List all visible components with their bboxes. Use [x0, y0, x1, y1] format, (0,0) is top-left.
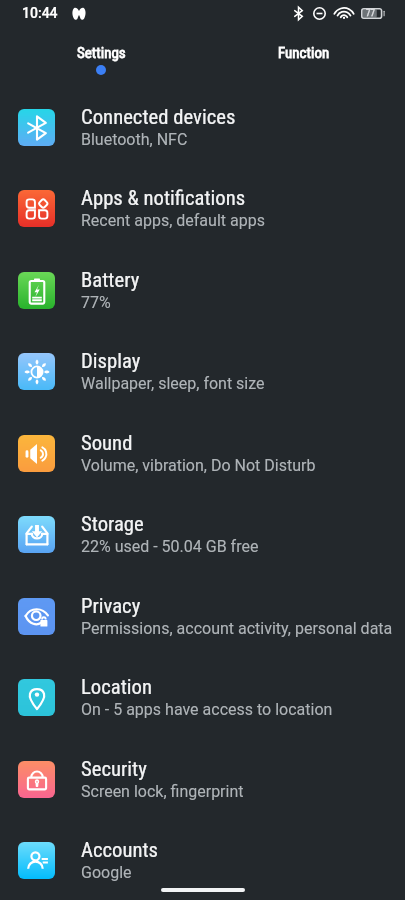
staticText: Google — [81, 863, 132, 882]
staticText: Volume, vibration, Do Not Disturb — [81, 456, 316, 475]
button[interactable]: Display — [0, 330, 405, 412]
button[interactable]: Connected devices — [0, 86, 405, 168]
staticText: Location — [81, 675, 152, 699]
staticText: Bluetooth, NFC — [81, 130, 188, 149]
staticText: 10:44 — [22, 5, 58, 21]
staticText: Recent apps, default apps — [81, 211, 265, 230]
staticText: Screen lock, fingerprint — [81, 782, 244, 801]
button[interactable]: Function — [202, 0, 405, 80]
staticText: Settings — [77, 44, 126, 62]
staticText: Permissions, account activity, personal … — [81, 619, 393, 638]
staticText: On - 5 apps have access to location — [81, 700, 333, 719]
staticText: Apps & notifications — [81, 186, 246, 210]
staticText: Display — [81, 349, 141, 373]
button[interactable]: Apps & notifications — [0, 167, 405, 249]
button[interactable]: Sound — [0, 412, 405, 494]
staticText: Privacy — [81, 594, 141, 618]
button[interactable]: Settings — [0, 0, 202, 80]
staticText: Connected devices — [81, 105, 236, 129]
staticText: Wallpaper, sleep, font size — [81, 374, 265, 393]
staticText: Function — [278, 44, 330, 62]
button[interactable]: Battery — [0, 249, 405, 331]
staticText: 77 — [366, 8, 375, 19]
staticText: Sound — [81, 431, 133, 455]
staticText: Accounts — [81, 838, 159, 862]
button[interactable]: Privacy — [0, 575, 405, 657]
staticText: Storage — [81, 512, 144, 536]
staticText: Battery — [81, 268, 140, 292]
button[interactable]: Security — [0, 738, 405, 820]
button[interactable]: Location — [0, 656, 405, 738]
staticText: Security — [81, 757, 147, 781]
button[interactable]: Accounts — [0, 819, 405, 900]
staticText: 77% — [81, 293, 111, 312]
button[interactable]: Storage — [0, 493, 405, 575]
staticText: 22% used - 50.04 GB free — [81, 537, 259, 556]
